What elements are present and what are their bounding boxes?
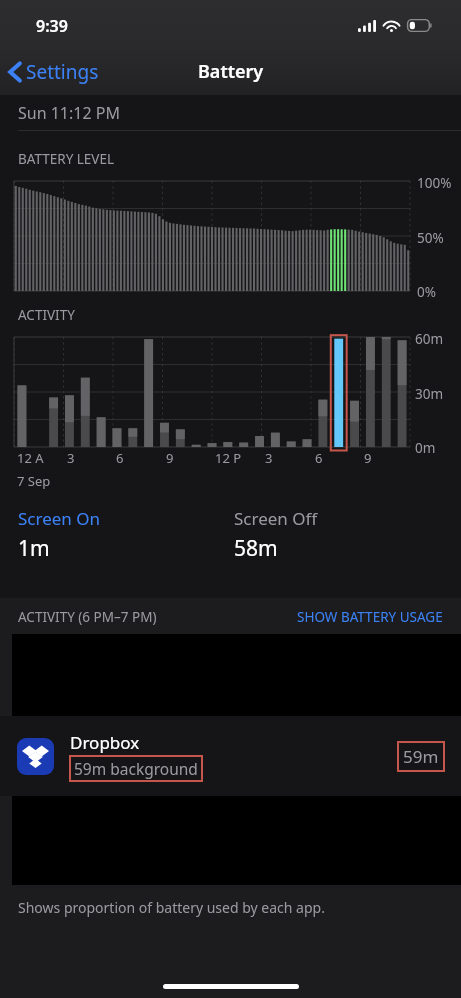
staticText: 50% [417, 229, 444, 247]
staticText: 7 Sep [17, 472, 51, 490]
staticText: 0m [415, 439, 436, 457]
staticText: 3 [265, 449, 273, 467]
staticText: Screen Off [234, 507, 318, 530]
staticText: SHOW BATTERY USAGE [297, 608, 443, 626]
button[interactable]: Screen On [10, 503, 109, 567]
staticText: 60m [415, 330, 444, 348]
staticText: 9 [364, 449, 372, 467]
staticText: 12 P [215, 449, 242, 467]
staticText: 100% [417, 174, 452, 192]
staticText: 30m [415, 385, 444, 403]
staticText: Shows proportion of battery used by each… [18, 898, 325, 917]
staticText: 9 [166, 449, 174, 467]
staticText: Battery [198, 59, 264, 84]
staticText: 6 [116, 449, 124, 467]
staticText: ACTIVITY (6 PM–7 PM) [18, 608, 157, 626]
staticText: 6 [315, 449, 323, 467]
staticText: Dropbox [70, 731, 140, 754]
staticText: 9:39 [36, 15, 68, 37]
button[interactable]: SHOW BATTERY USAGE [287, 598, 461, 634]
staticText: 12 A [17, 449, 44, 467]
staticText: 0% [417, 283, 436, 301]
button[interactable]: Dropbox app icon [0, 716, 461, 796]
staticText: 58m [234, 534, 278, 563]
staticText: 59m background [74, 758, 198, 779]
staticText: BATTERY LEVEL [18, 150, 115, 168]
button[interactable]: Screen Off [226, 503, 326, 567]
staticText: ACTIVITY [18, 306, 75, 324]
staticText: 1m [18, 534, 50, 563]
staticText: Sun 11:12 PM [18, 102, 120, 124]
staticText: 3 [67, 449, 75, 467]
staticText: 59m [403, 745, 439, 768]
staticText: Screen On [18, 507, 101, 530]
other: Dropbox app icon [17, 738, 54, 775]
staticText: Settings [26, 59, 99, 85]
button[interactable]: Settings [0, 52, 111, 92]
